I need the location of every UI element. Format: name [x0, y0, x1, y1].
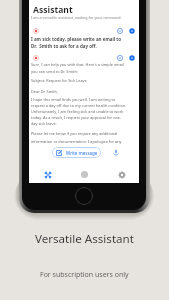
staticText: Sure, I can help you with that. Here's a… — [31, 62, 124, 74]
button[interactable]: Copy — [129, 55, 135, 61]
staticText: Subject: Request for Sick Leave — [31, 78, 87, 83]
button[interactable]: Regenerate — [117, 28, 123, 34]
button[interactable]: Copy — [129, 28, 135, 34]
staticText: I am a versatile assistant, waiting for … — [31, 15, 122, 20]
button[interactable]: Settings — [103, 168, 140, 181]
staticText: Assistant — [33, 4, 73, 16]
staticText: Versatile Assistant — [35, 231, 134, 247]
staticText: I am sick today, please write an email t… — [31, 36, 122, 49]
button[interactable]: History — [66, 168, 103, 181]
staticText: Write message — [66, 150, 98, 156]
button[interactable]: Voice input — [110, 147, 121, 158]
staticText: Dear Dr. Smith, — [31, 89, 59, 94]
button[interactable]: Write message — [52, 147, 101, 158]
staticText: Please let me know if you require any ad… — [31, 131, 122, 144]
staticText: For subscription users only — [40, 270, 129, 280]
button[interactable]: Regenerate — [117, 55, 123, 61]
button[interactable]: Assistant — [30, 168, 66, 181]
staticText: I hope this email finds you well. I am w… — [31, 97, 127, 126]
